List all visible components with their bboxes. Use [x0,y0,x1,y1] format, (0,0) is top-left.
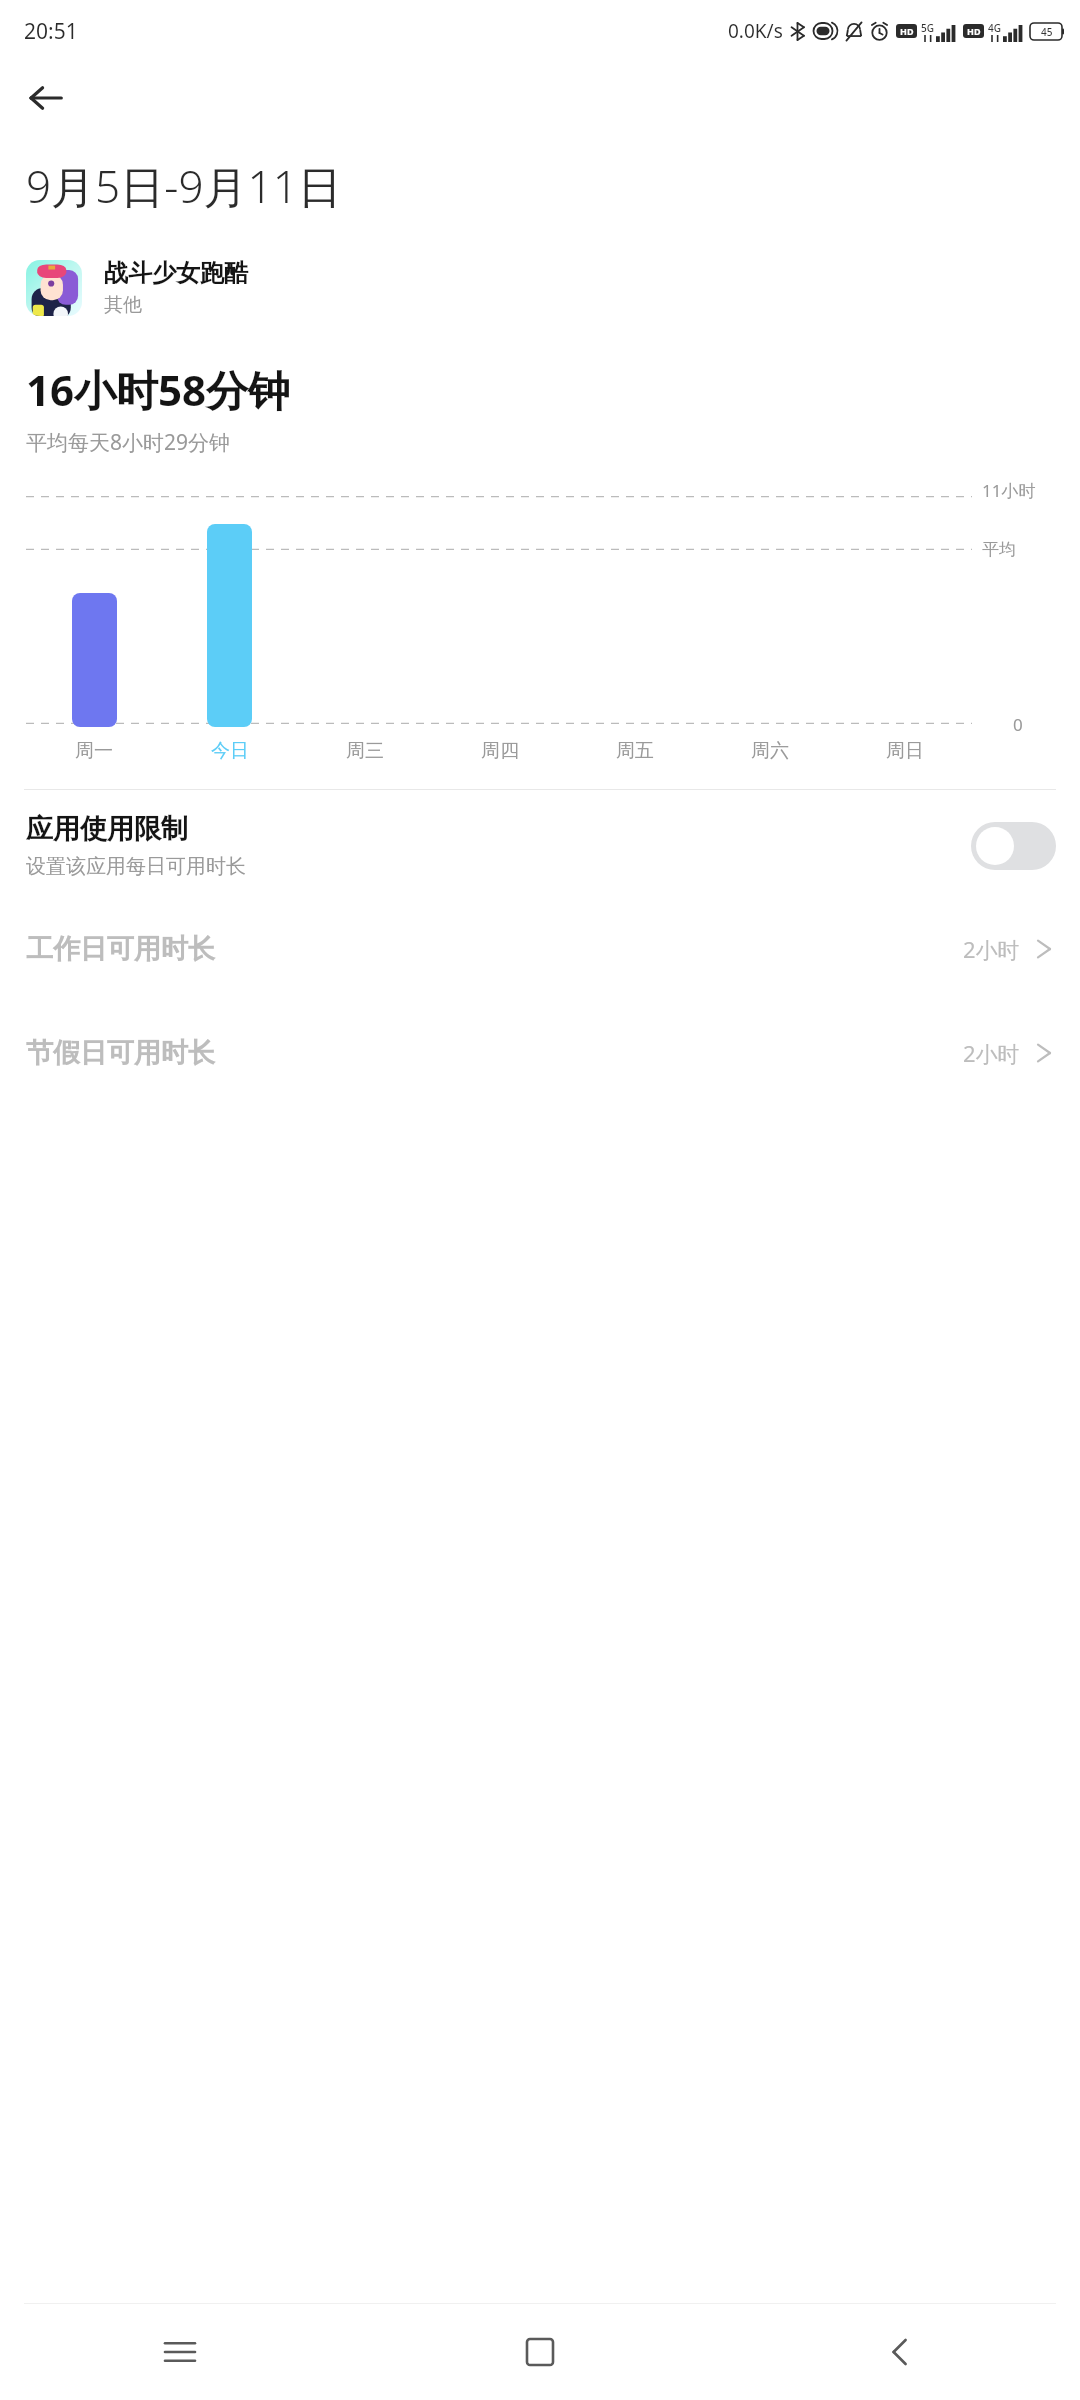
button[interactable]: App limit toggle [971,822,1056,870]
staticText: 11小时 [982,479,1036,502]
staticText: 45 [1041,25,1053,39]
button[interactable]: 节假日可用时长 [0,1001,1080,1105]
staticText: 设置该应用每日可用时长 [26,854,246,879]
button[interactable]: Back [10,62,82,134]
staticText: 9月5日-9月11日 [26,156,342,216]
staticText: 周一 [75,739,113,763]
button[interactable]: 今日 [162,739,297,763]
button[interactable]: 周四 [432,739,567,763]
button[interactable]: 周三 [297,739,432,763]
button[interactable]: 工作日可用时长 [0,897,1080,1001]
button[interactable]: 周五 [567,739,702,763]
staticText: 战斗少女跑酷 [104,258,248,288]
staticText: 16小时58分钟 [26,361,291,418]
staticText: 5G [921,21,934,35]
staticText: 周五 [616,739,654,763]
staticText: 平均每天8小时29分钟 [26,428,231,457]
staticText: 节假日可用时长 [26,1036,963,1070]
staticText: HD [900,25,914,37]
staticText: HD [967,25,981,37]
button[interactable]: Recents [0,2304,360,2400]
staticText: 其他 [104,293,142,317]
button[interactable]: 应用使用限制 [0,812,1080,879]
button[interactable]: 周日 [837,739,972,763]
staticText: 平均 [982,539,1016,560]
staticText: 4G [988,21,1001,35]
button[interactable]: 周六 [702,739,837,763]
staticText: 周六 [751,739,789,763]
staticText: 周四 [481,739,519,763]
staticText: 今日 [211,739,249,763]
staticText: 周日 [886,739,924,763]
staticText: 周三 [346,739,384,763]
staticText: 2小时 [963,1038,1020,1068]
staticText: 工作日可用时长 [26,932,963,966]
button[interactable]: 战斗少女跑酷 [0,258,1080,317]
staticText: 0 [1013,713,1023,736]
staticText: 应用使用限制 [26,812,188,846]
button[interactable]: Back [720,2304,1080,2400]
staticText: 20:51 [24,17,78,46]
button[interactable]: 周一 [26,739,162,763]
staticText: 2小时 [963,934,1020,964]
button[interactable]: Home [360,2304,720,2400]
staticText: 0.0K/s [728,18,783,44]
